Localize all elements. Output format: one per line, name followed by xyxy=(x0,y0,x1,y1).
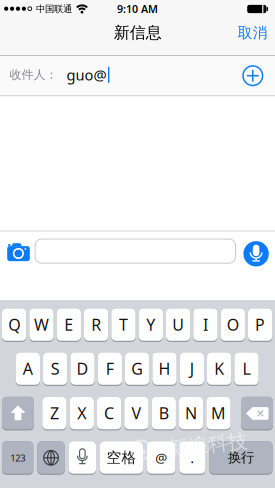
staticText: J xyxy=(190,358,194,379)
staticText: guo@ xyxy=(66,65,106,85)
staticText: R xyxy=(91,314,101,335)
staticText: 空格 xyxy=(106,448,136,466)
staticText: V xyxy=(131,402,141,424)
staticText: 收件人： xyxy=(9,67,57,82)
staticText: P xyxy=(255,314,265,335)
staticText: 中国联通 xyxy=(36,3,72,15)
staticText: C xyxy=(104,402,114,424)
staticText: M xyxy=(211,402,226,424)
staticText: Y xyxy=(146,314,155,335)
staticText: B xyxy=(159,402,169,424)
staticText: 9:10 AM xyxy=(117,2,158,16)
staticText: T xyxy=(119,314,128,335)
staticText: W xyxy=(34,314,49,335)
staticText: . xyxy=(190,448,194,467)
staticText: 换行 xyxy=(228,449,254,466)
staticText: @ xyxy=(155,449,167,466)
staticText: I xyxy=(203,314,208,335)
staticText: O xyxy=(227,314,239,335)
staticText: L xyxy=(242,358,250,379)
staticText: K xyxy=(214,358,224,379)
staticText: Q xyxy=(8,314,20,335)
staticText: 新浪科技 xyxy=(168,433,248,457)
staticText: G xyxy=(131,358,143,379)
staticText: E xyxy=(64,314,73,335)
staticText: Z xyxy=(50,402,59,424)
staticText: D xyxy=(76,358,88,379)
staticText: A xyxy=(23,358,33,379)
staticText: 新信息 xyxy=(114,23,162,42)
staticText: F xyxy=(106,358,114,379)
staticText: 取消 xyxy=(238,24,268,42)
staticText: U xyxy=(172,314,184,335)
staticText: 123 xyxy=(10,452,25,464)
staticText: X xyxy=(77,402,86,424)
staticText: N xyxy=(185,402,197,424)
staticText: S xyxy=(51,358,60,379)
staticText: H xyxy=(158,358,170,379)
